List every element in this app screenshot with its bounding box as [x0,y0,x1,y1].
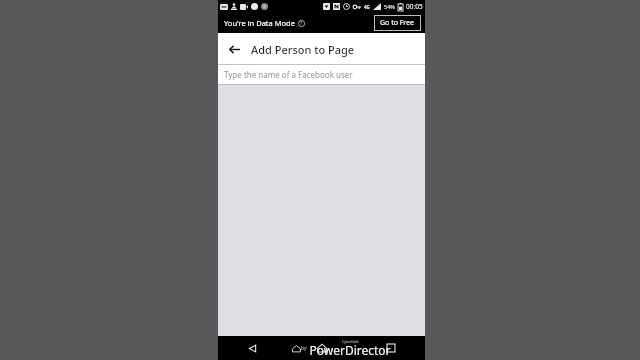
button[interactable]: Home [287,336,356,360]
button[interactable]: Type the name of a Facebook user [218,65,425,84]
staticText: CyberLink [342,339,359,344]
button[interactable]: Back [218,336,287,360]
staticText: 00:05 [406,2,423,11]
staticText: You're in Data Mode [224,18,295,28]
staticText: Type the name of a Facebook user [224,69,353,80]
staticText: Add Person to Page [251,42,355,57]
button[interactable]: Recents [356,336,425,360]
staticText: ? [300,20,303,27]
staticText: Go to Free [380,18,415,28]
button[interactable]: Back [224,39,244,59]
button[interactable]: Go to Free [374,15,421,31]
staticText: 4G [364,4,370,10]
button[interactable]: Help [298,20,305,27]
staticText: by [301,345,307,352]
staticText: PowerDirector [309,342,391,358]
staticText: 54% [384,3,395,10]
